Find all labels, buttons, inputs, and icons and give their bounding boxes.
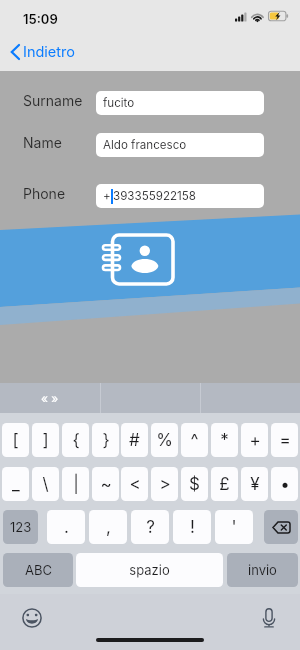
staticText: spazio bbox=[129, 562, 170, 578]
button[interactable]: $ bbox=[181, 467, 208, 501]
button[interactable]: } bbox=[92, 423, 119, 457]
button[interactable]: ABC bbox=[3, 553, 73, 587]
button[interactable]: = bbox=[271, 423, 298, 457]
button[interactable]: Backspace bbox=[264, 510, 298, 544]
button[interactable]: ¥ bbox=[241, 467, 268, 501]
button[interactable]: ! bbox=[173, 510, 211, 544]
button[interactable]: Emoji bbox=[16, 602, 48, 634]
button[interactable]: Aldo francesco bbox=[96, 133, 264, 157]
staticText: £ bbox=[219, 474, 230, 495]
staticText: , bbox=[106, 517, 111, 538]
button[interactable]: . bbox=[47, 510, 85, 544]
button[interactable]: [ bbox=[2, 423, 29, 457]
staticText: 393355922158 bbox=[113, 189, 197, 203]
button[interactable]: % bbox=[151, 423, 178, 457]
staticText: ABC bbox=[25, 562, 52, 578]
button[interactable]: + bbox=[96, 184, 264, 208]
staticText: ~ bbox=[100, 474, 112, 495]
staticText: Aldo francesco bbox=[103, 138, 187, 152]
staticText: fucito bbox=[103, 96, 135, 110]
staticText: ^ bbox=[190, 430, 199, 451]
staticText: ? bbox=[146, 517, 155, 538]
button[interactable]: ? bbox=[131, 510, 169, 544]
button[interactable]: { bbox=[62, 423, 89, 457]
staticText: 123 bbox=[10, 519, 32, 535]
staticText: + bbox=[249, 430, 261, 451]
staticText: = bbox=[279, 430, 291, 451]
staticText: Phone bbox=[23, 185, 66, 202]
staticText: • bbox=[280, 474, 290, 495]
button[interactable]: ] bbox=[32, 423, 59, 457]
staticText: \ bbox=[42, 474, 49, 495]
staticText: _ bbox=[12, 474, 20, 495]
button[interactable]: invio bbox=[227, 553, 298, 587]
button[interactable]: fucito bbox=[96, 91, 264, 115]
button[interactable]: Indietro bbox=[6, 40, 79, 64]
staticText: + bbox=[103, 189, 111, 203]
button[interactable]: | bbox=[62, 467, 89, 501]
staticText: [ bbox=[12, 430, 19, 451]
button[interactable]: _ bbox=[2, 467, 29, 501]
button[interactable]: • bbox=[271, 467, 298, 501]
staticText: % bbox=[156, 430, 173, 451]
staticText: ! bbox=[190, 517, 195, 538]
staticText: < bbox=[129, 474, 141, 495]
staticText: « » bbox=[41, 391, 59, 406]
button[interactable]: \ bbox=[32, 467, 59, 501]
button[interactable]: ~ bbox=[92, 467, 119, 501]
staticText: ] bbox=[42, 430, 49, 451]
button[interactable]: > bbox=[151, 467, 178, 501]
button[interactable]: ^ bbox=[181, 423, 208, 457]
button[interactable]: + bbox=[241, 423, 268, 457]
button[interactable]: spazio bbox=[76, 553, 223, 587]
staticText: | bbox=[73, 474, 79, 495]
button[interactable]: 123 bbox=[3, 510, 38, 544]
staticText: # bbox=[129, 430, 140, 451]
button[interactable]: # bbox=[121, 423, 148, 457]
staticText: 15:09 bbox=[23, 11, 58, 27]
staticText: ' bbox=[231, 517, 237, 538]
staticText: ¥ bbox=[250, 474, 260, 495]
staticText: > bbox=[159, 474, 171, 495]
staticText: $ bbox=[189, 474, 200, 495]
staticText: } bbox=[102, 430, 110, 451]
button[interactable]: , bbox=[89, 510, 127, 544]
staticText: . bbox=[64, 517, 69, 538]
button[interactable]: < bbox=[121, 467, 148, 501]
staticText: * bbox=[220, 430, 229, 451]
staticText: Indietro bbox=[23, 43, 75, 61]
staticText: Name bbox=[23, 134, 62, 151]
staticText: invio bbox=[248, 562, 277, 578]
staticText: Surname bbox=[23, 92, 83, 109]
button[interactable]: Dictation bbox=[253, 602, 285, 634]
staticText: { bbox=[72, 430, 80, 451]
button[interactable]: « » bbox=[0, 383, 100, 413]
button[interactable]: ' bbox=[215, 510, 253, 544]
button[interactable]: £ bbox=[211, 467, 238, 501]
button[interactable]: * bbox=[211, 423, 238, 457]
